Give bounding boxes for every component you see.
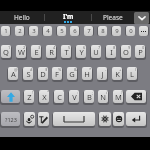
staticText: 1 <box>8 45 11 50</box>
staticText: 9 <box>115 27 119 35</box>
button[interactable]: ?123 <box>1 112 20 126</box>
staticText: 4 <box>46 27 50 35</box>
staticText: O <box>123 47 129 57</box>
staticText: & <box>74 67 77 72</box>
staticText: * <box>89 67 92 72</box>
button[interactable]: 8 <box>98 26 107 36</box>
staticText: 6 <box>73 27 77 35</box>
staticText: Z <box>27 92 32 102</box>
staticText: ( <box>135 67 137 72</box>
button[interactable]: R <box>46 45 56 58</box>
button[interactable]: T <box>61 45 71 58</box>
button[interactable]: B <box>84 90 94 103</box>
staticText: 1 <box>4 27 8 35</box>
staticText: : <box>77 90 79 95</box>
staticText: P <box>138 47 143 57</box>
button[interactable]: H <box>82 67 92 80</box>
button[interactable]: Emoji <box>113 112 124 126</box>
staticText: G <box>69 69 75 79</box>
staticText: 6 <box>83 45 86 50</box>
staticText: 9 <box>128 45 131 50</box>
staticText: 7 <box>98 45 101 50</box>
button[interactable]: Handwriting <box>38 112 49 126</box>
staticText: " <box>47 90 49 95</box>
staticText: 8 <box>101 27 105 35</box>
button[interactable]: Q <box>1 45 11 58</box>
button[interactable]: U <box>91 45 101 58</box>
button[interactable]: 0 <box>126 26 135 36</box>
staticText: L <box>130 69 134 79</box>
button[interactable]: Z <box>24 90 34 103</box>
staticText: W <box>18 47 25 57</box>
staticText: V <box>72 92 77 102</box>
button[interactable]: 3 <box>29 26 38 36</box>
button[interactable]: Hello <box>0 11 44 24</box>
staticText: 5 <box>60 27 64 35</box>
button[interactable]: W <box>16 45 26 58</box>
button[interactable]: I'm <box>45 11 91 24</box>
staticText: 3 <box>38 45 41 50</box>
staticText: X <box>42 92 47 102</box>
staticText: - <box>105 67 107 72</box>
button[interactable]: 6 <box>70 26 79 36</box>
button[interactable]: More suggestions <box>134 12 149 24</box>
staticText: F <box>55 69 59 79</box>
button[interactable]: 7 <box>84 26 93 36</box>
button[interactable]: Y <box>76 45 86 58</box>
staticText: Q <box>3 47 9 57</box>
button[interactable]: 5 <box>57 26 66 36</box>
staticText: 0 <box>142 45 145 50</box>
staticText: 7 <box>87 27 91 35</box>
button[interactable]: Voice input <box>24 112 35 126</box>
staticText: ; <box>92 90 94 95</box>
button[interactable]: Settings <box>99 112 111 126</box>
button[interactable]: J <box>97 67 107 80</box>
staticText: K <box>115 69 120 79</box>
staticText: I <box>110 47 113 57</box>
button[interactable]: Space <box>53 112 95 126</box>
button[interactable]: F <box>52 67 62 80</box>
button[interactable]: 4 <box>43 26 52 36</box>
staticText: N <box>100 92 106 102</box>
staticText: C <box>57 92 62 102</box>
button[interactable]: Enter <box>126 112 146 126</box>
button[interactable]: X <box>39 90 49 103</box>
button[interactable]: D <box>38 67 48 80</box>
staticText: % <box>58 67 62 72</box>
staticText: 3 <box>32 27 36 35</box>
staticText: # <box>30 67 33 72</box>
button[interactable]: Backspace <box>126 90 146 103</box>
staticText: 2 <box>23 45 26 50</box>
staticText: $ <box>45 67 48 72</box>
staticText: Y <box>79 47 84 57</box>
button[interactable]: E <box>31 45 41 58</box>
button[interactable]: I <box>106 45 116 58</box>
button[interactable]: G <box>67 67 77 80</box>
button[interactable]: K <box>112 67 122 80</box>
staticText: + <box>119 67 122 72</box>
button[interactable]: P <box>135 45 145 58</box>
button[interactable]: C <box>54 90 64 103</box>
button[interactable]: N <box>98 90 108 103</box>
staticText: B <box>87 92 92 102</box>
staticText: I'm <box>63 12 74 21</box>
button[interactable]: More symbols <box>139 26 148 36</box>
button[interactable]: Shift <box>1 90 20 103</box>
staticText: D <box>40 69 46 79</box>
button[interactable]: 9 <box>112 26 121 36</box>
button[interactable]: O <box>121 45 131 58</box>
staticText: Hello <box>14 13 30 22</box>
button[interactable]: V <box>69 90 79 103</box>
button[interactable]: S <box>23 67 33 80</box>
button[interactable]: Please <box>92 11 134 24</box>
button[interactable]: L <box>127 67 137 80</box>
staticText: E <box>34 47 39 57</box>
button[interactable]: A <box>8 67 18 80</box>
staticText: @ <box>14 67 18 72</box>
button[interactable]: 1 <box>1 26 10 36</box>
button[interactable]: 2 <box>15 26 24 36</box>
staticText: ! <box>32 90 34 95</box>
staticText: H <box>84 69 90 79</box>
button[interactable]: M <box>113 90 123 103</box>
staticText: 5 <box>68 45 71 50</box>
